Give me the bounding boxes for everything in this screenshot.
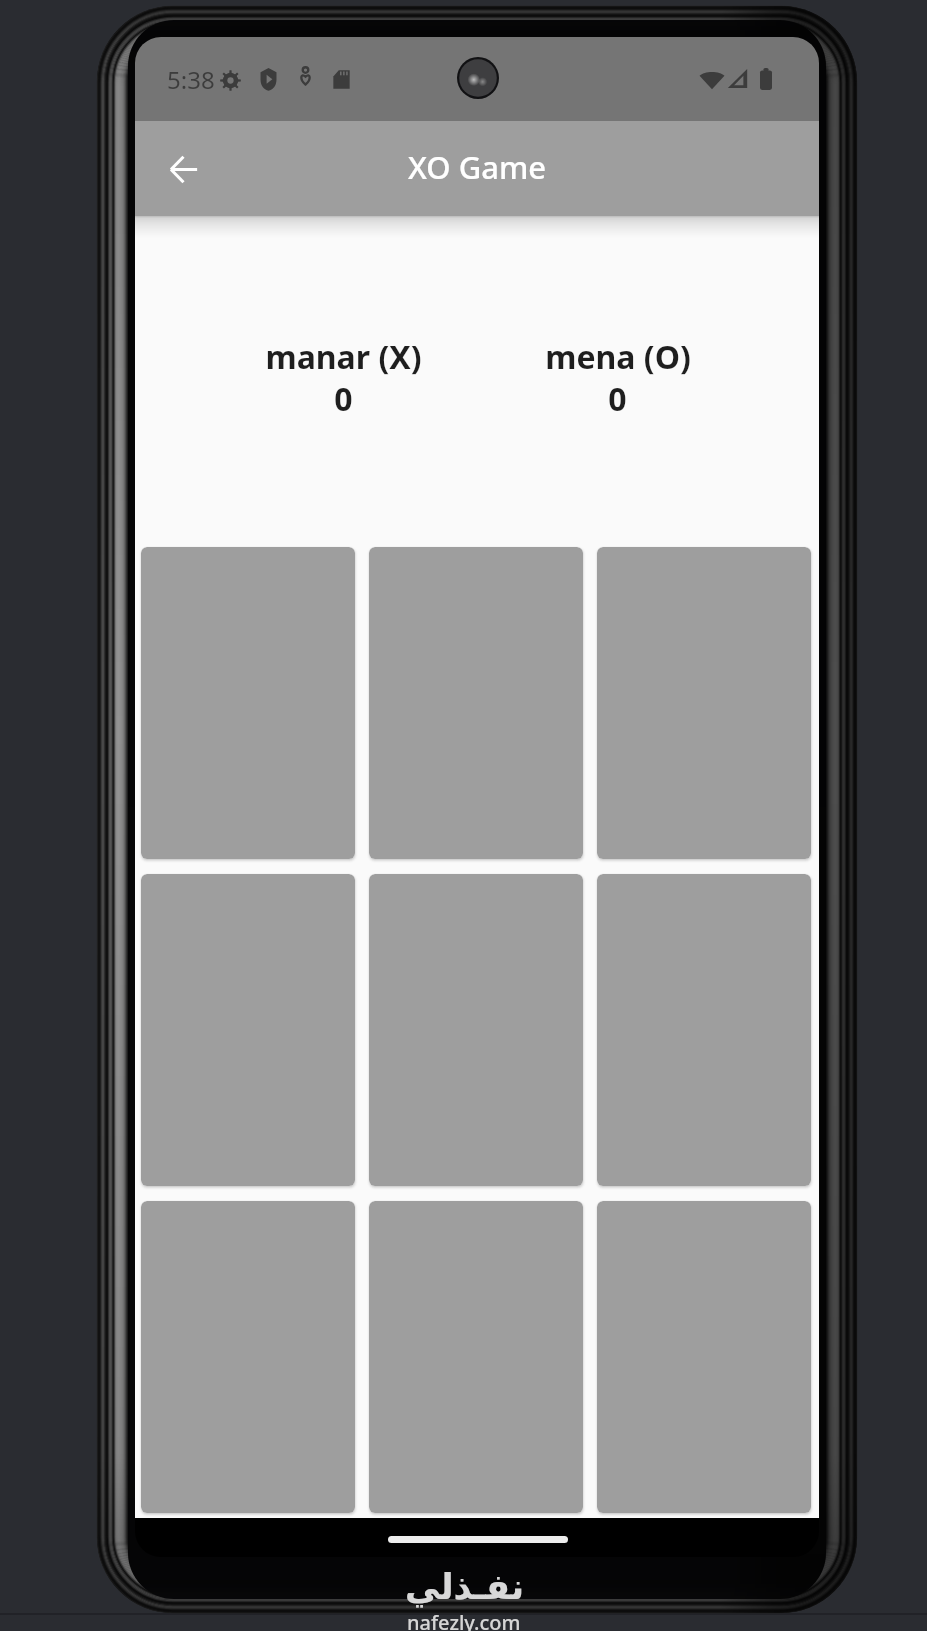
staticText: nafezly.com	[407, 1609, 521, 1631]
staticText: 0	[334, 377, 353, 421]
staticText: manar (X)	[265, 335, 422, 379]
staticText: XO Game	[408, 146, 547, 188]
staticText: 5:38	[167, 63, 215, 96]
button[interactable]: Back	[153, 139, 213, 199]
staticText: نفـذلي	[405, 1567, 525, 1608]
staticText: mena (O)	[545, 335, 691, 379]
staticText: 0	[608, 377, 627, 421]
